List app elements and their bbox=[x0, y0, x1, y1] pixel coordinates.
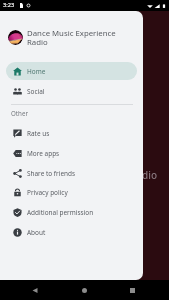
button[interactable]: Rate us bbox=[6, 124, 137, 142]
button[interactable]: Share to friends bbox=[6, 164, 137, 182]
staticText: 3:23 bbox=[3, 1, 15, 9]
staticText: More apps bbox=[27, 149, 60, 158]
button[interactable]: More apps bbox=[6, 144, 137, 162]
button[interactable]: Additional permission bbox=[6, 203, 137, 221]
staticText: About bbox=[27, 228, 46, 237]
staticText: Additional permission bbox=[27, 208, 94, 217]
button[interactable]: Back bbox=[29, 284, 41, 296]
staticText: Privacy policy bbox=[27, 188, 68, 197]
staticText: Share to friends bbox=[27, 169, 76, 178]
staticText: Dance Music Experience Radio bbox=[27, 28, 128, 48]
staticText: dio bbox=[142, 168, 158, 182]
staticText: Home bbox=[27, 67, 46, 76]
button[interactable]: About bbox=[6, 223, 137, 241]
staticText: Social bbox=[27, 87, 45, 96]
button[interactable]: Home bbox=[78, 284, 90, 296]
staticText: Other bbox=[11, 109, 28, 117]
button[interactable]: Privacy policy bbox=[6, 183, 137, 201]
staticText: Rate us bbox=[27, 129, 50, 138]
button[interactable]: Recents bbox=[126, 284, 138, 296]
button[interactable]: Social bbox=[6, 82, 137, 100]
button[interactable]: Home bbox=[6, 62, 137, 80]
